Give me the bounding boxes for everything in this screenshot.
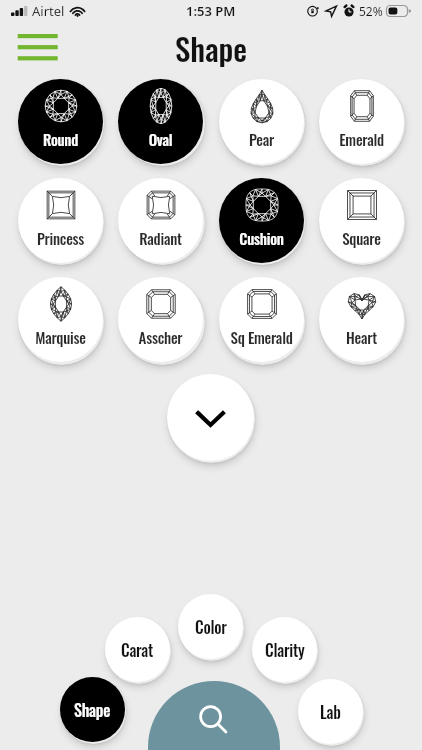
button[interactable]: Search [148, 681, 280, 750]
staticText: Pear [219, 128, 304, 150]
button[interactable]: Carat [105, 617, 170, 682]
button[interactable]: Emerald [319, 79, 404, 164]
staticText: Clarity [265, 638, 305, 662]
staticText: Heart [319, 326, 404, 348]
staticText: Shape [74, 698, 111, 722]
staticText: Asscher [118, 326, 203, 348]
staticText: Marquise [18, 326, 103, 348]
staticText: Carat [121, 638, 154, 662]
staticText: Radiant [118, 227, 203, 249]
staticText: Airtel [32, 2, 65, 20]
button[interactable]: Show more [167, 374, 254, 461]
staticText: Shape [175, 25, 248, 71]
button[interactable]: Sq Emerald [219, 277, 304, 362]
button[interactable]: Lab [298, 679, 363, 744]
staticText: Princess [18, 227, 103, 249]
button[interactable]: Round [18, 79, 103, 164]
button[interactable]: Asscher [118, 277, 203, 362]
staticText: Round [18, 128, 103, 150]
button[interactable]: Heart [319, 277, 404, 362]
button[interactable]: Cushion [219, 178, 304, 263]
staticText: Lab [320, 700, 341, 724]
staticText: 52% [359, 3, 383, 19]
button[interactable]: Oval [118, 79, 203, 164]
staticText: Sq Emerald [219, 326, 304, 348]
staticText: Oval [118, 128, 203, 150]
staticText: Square [319, 227, 404, 249]
button[interactable]: Menu [14, 30, 60, 64]
button[interactable]: Radiant [118, 178, 203, 263]
staticText: Color [195, 615, 227, 639]
button[interactable]: Shape [60, 677, 125, 742]
button[interactable]: Clarity [252, 617, 317, 682]
button[interactable]: Pear [219, 79, 304, 164]
button[interactable]: Princess [18, 178, 103, 263]
staticText: Cushion [219, 227, 304, 249]
staticText: Emerald [319, 128, 404, 150]
button[interactable]: Marquise [18, 277, 103, 362]
button[interactable]: Square [319, 178, 404, 263]
staticText: 1:53 PM [186, 2, 236, 20]
button[interactable]: Color [178, 594, 243, 659]
